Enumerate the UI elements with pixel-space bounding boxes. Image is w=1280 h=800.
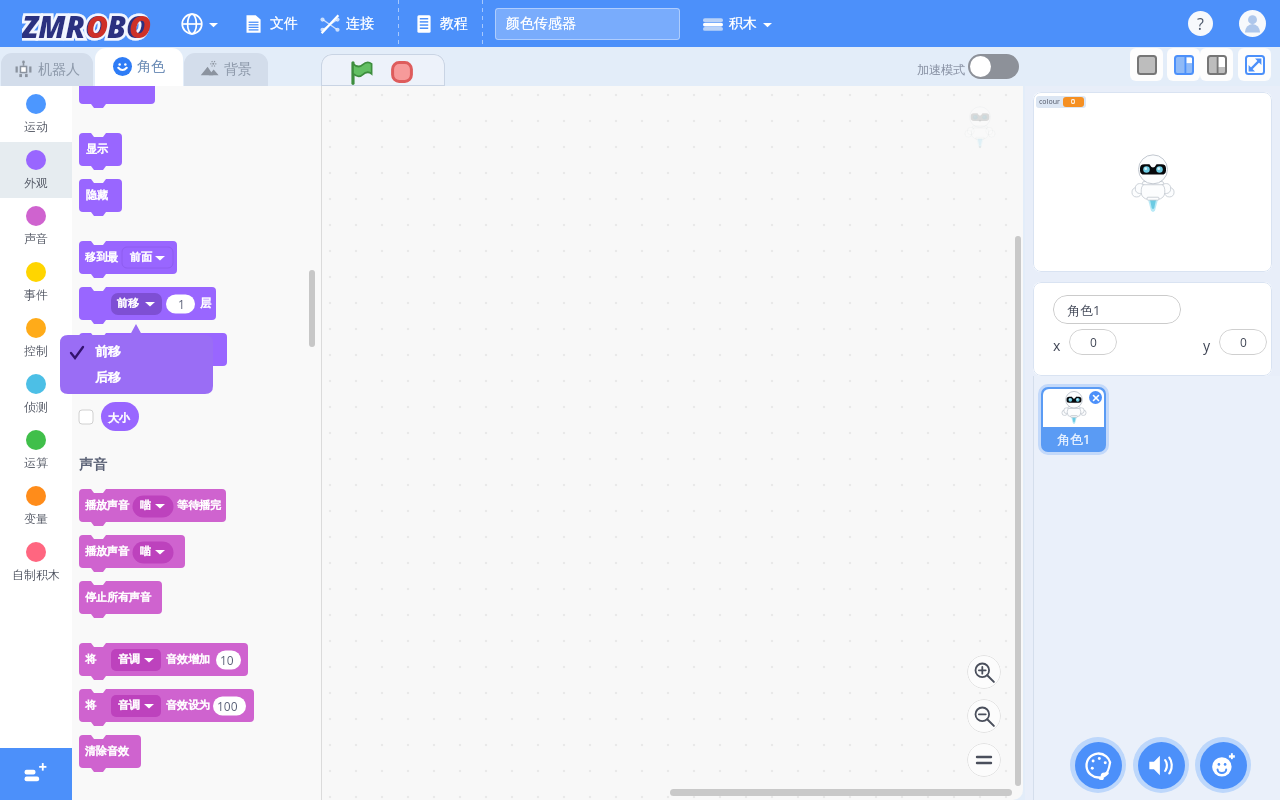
button[interactable]: 后移	[60, 364, 213, 390]
staticText: 声音	[79, 456, 107, 474]
button[interactable]: Account	[1239, 10, 1266, 37]
staticText: 连接	[346, 15, 374, 33]
button[interactable]: 0	[1069, 329, 1117, 355]
button[interactable]: 运动	[0, 86, 72, 142]
button[interactable]: 运算	[0, 422, 72, 478]
button[interactable]: Stop	[389, 59, 415, 85]
button[interactable]: 前移	[60, 338, 213, 364]
staticText: 角色	[137, 58, 165, 76]
staticText: 将	[85, 698, 96, 712]
button[interactable]: 连接	[317, 9, 376, 39]
staticText: 音调	[118, 652, 140, 666]
staticText: 将	[85, 652, 96, 666]
button[interactable]: 将音调音效增加 10	[79, 643, 248, 676]
staticText: 侦测	[24, 399, 48, 414]
staticText: 前移	[95, 343, 121, 359]
staticText: 音效设为	[166, 698, 210, 712]
button[interactable]: 积木	[700, 9, 774, 39]
button[interactable]: 前移 1 层	[79, 287, 216, 320]
button[interactable]: Reset zoom	[967, 743, 1001, 777]
staticText: 事件	[24, 287, 48, 302]
staticText: 播放声音	[85, 498, 129, 512]
staticText: y	[1203, 336, 1211, 355]
button[interactable]: Zoom in	[967, 655, 1001, 689]
staticText: 显示	[86, 142, 108, 156]
staticText: 0	[1090, 334, 1097, 350]
button[interactable]: Add sound	[1133, 737, 1189, 793]
staticText: R	[66, 6, 86, 42]
staticText: 等待播完	[177, 498, 221, 512]
staticText: 前面	[130, 250, 152, 264]
staticText: 运动	[24, 119, 48, 134]
button[interactable]: Help	[1188, 11, 1213, 36]
button[interactable]: Add extension	[0, 748, 72, 800]
staticText: 0	[1240, 334, 1247, 350]
staticText: 积木	[729, 15, 757, 33]
staticText: 运算	[24, 455, 48, 470]
button[interactable]: 控制	[0, 310, 72, 366]
button[interactable]: 声音	[0, 198, 72, 254]
staticText: 0	[1071, 97, 1076, 107]
button[interactable]: 机器人	[1, 53, 93, 86]
staticText: 机器人	[38, 61, 80, 79]
button[interactable]: Layout mode 1	[1167, 48, 1200, 81]
button[interactable]: 停止所有声音	[79, 581, 162, 614]
staticText: 清除音效	[85, 744, 129, 758]
button[interactable]: 播放声音等待播完	[79, 489, 226, 522]
staticText: 自制积木	[12, 567, 60, 582]
button[interactable]: 颜色传感器	[495, 8, 680, 40]
button[interactable]: 显示	[79, 133, 122, 166]
button[interactable]: 背景	[184, 53, 268, 86]
button[interactable]: Layout mode 2	[1200, 48, 1233, 81]
staticText: 1	[178, 296, 185, 312]
staticText: 前移	[117, 296, 139, 310]
button[interactable]: 角色	[95, 48, 183, 86]
button[interactable]: Delete sprite	[1089, 391, 1102, 404]
staticText: 外观	[24, 175, 48, 190]
button[interactable]: 0	[1219, 329, 1267, 355]
button[interactable]: 外观	[0, 142, 72, 198]
button[interactable]: 自制积木	[0, 534, 72, 590]
staticText: colour	[1039, 97, 1060, 107]
staticText: 音调	[118, 698, 140, 712]
button[interactable]: 变量	[0, 478, 72, 534]
button[interactable]: 播放声音	[79, 535, 185, 568]
button[interactable]: Start	[348, 59, 374, 85]
staticText: x	[1053, 336, 1061, 355]
button[interactable]: 侦测	[0, 366, 72, 422]
button[interactable]: Zoom out	[967, 699, 1001, 733]
staticText: 加速模式	[917, 62, 965, 77]
button[interactable]: 事件	[0, 254, 72, 310]
staticText: 文件	[270, 15, 298, 33]
button[interactable]: Add sprite	[1195, 737, 1251, 793]
staticText: ZMROBO	[22, 6, 149, 42]
staticText: 播放声音	[85, 544, 129, 558]
button[interactable]	[968, 54, 1019, 79]
staticText: 声音	[24, 231, 48, 246]
staticText: 背景	[224, 61, 252, 79]
staticText: ZM	[22, 6, 66, 42]
staticText: 角色1	[1067, 301, 1101, 319]
staticText: 层	[200, 296, 211, 310]
staticText: O	[86, 6, 109, 42]
staticText: 角色1	[1057, 430, 1091, 448]
staticText: 教程	[440, 15, 468, 33]
button[interactable]: Layout mode 3	[1238, 48, 1271, 81]
staticText: 喵	[140, 544, 151, 558]
button[interactable]: 隐藏	[79, 179, 122, 212]
button[interactable]: Paint new sprite	[1070, 737, 1126, 793]
staticText: O	[129, 6, 152, 42]
button[interactable]	[179, 9, 220, 39]
button[interactable]: Delete sprite	[1038, 384, 1109, 455]
button[interactable]: 将音调音效设为 100	[79, 689, 254, 722]
staticText: 移到最	[85, 250, 118, 264]
button[interactable]: 文件	[241, 9, 300, 39]
button[interactable]: 清除音效	[79, 735, 141, 768]
button[interactable]: Layout mode 0	[1130, 48, 1163, 81]
button[interactable]: 移到最前面	[79, 241, 177, 274]
button[interactable]: 角色1	[1053, 295, 1181, 324]
button[interactable]: 大小	[101, 402, 139, 431]
staticText: B	[109, 6, 129, 42]
staticText: ?	[1197, 13, 1204, 35]
button[interactable]: 教程	[411, 9, 470, 39]
